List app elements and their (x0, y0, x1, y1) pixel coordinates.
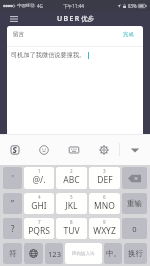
button[interactable]: ' (3, 167, 22, 189)
button[interactable]: 换行 (124, 243, 147, 264)
button[interactable]: 1 (24, 167, 54, 189)
staticText: 优步 (81, 15, 94, 23)
button[interactable]: 6 (89, 193, 120, 214)
staticText: ' (12, 173, 14, 184)
button[interactable]: ? (3, 218, 22, 239)
button[interactable]: 3 (89, 167, 120, 189)
staticText: 4 (38, 194, 41, 200)
staticText: 5 (70, 194, 73, 200)
staticText: UBER (57, 14, 81, 24)
staticText: MNO (94, 200, 115, 212)
staticText: 搜狗输入法 (72, 251, 95, 257)
staticText: 9 (103, 219, 106, 225)
button[interactable]: 重输 (122, 193, 147, 214)
staticText: DEF (97, 174, 113, 186)
button[interactable]: 9 (89, 218, 120, 239)
staticText: 0 (132, 224, 137, 234)
staticText: 6 (103, 194, 106, 200)
button[interactable]: 中。 (104, 243, 122, 264)
button[interactable]: Sogou input method (0, 134, 29, 165)
staticText: 2 (70, 168, 73, 174)
staticText: WXYZ (93, 225, 116, 237)
staticText: PQRS (28, 225, 50, 237)
staticText: ” (11, 198, 14, 209)
button[interactable]: Switch language (24, 243, 43, 264)
button[interactable]: Space (65, 243, 102, 264)
button[interactable]: 8 (56, 218, 87, 239)
button[interactable]: 123 (45, 243, 63, 264)
staticText: ABC (63, 174, 80, 186)
staticText: GHI (31, 200, 47, 212)
staticText: 1 (38, 168, 41, 174)
staticText: @/. (32, 174, 46, 186)
staticText: 123 (48, 249, 61, 259)
staticText: 下午11:44 (63, 3, 84, 9)
button[interactable]: 完成 (120, 27, 137, 42)
staticText: 中。 (106, 249, 121, 258)
button[interactable]: Hide keyboard (120, 134, 150, 165)
button[interactable]: 符 (3, 243, 22, 264)
button[interactable]: Backspace (122, 167, 147, 189)
button[interactable]: 4 (24, 193, 54, 214)
staticText: 换行 (128, 249, 143, 258)
button[interactable]: Keyboard layout (59, 134, 89, 165)
staticText: 重输 (127, 199, 142, 208)
button[interactable]: Emoji (29, 134, 59, 165)
staticText: 3 (103, 168, 106, 174)
button[interactable]: Settings (89, 134, 119, 165)
staticText: 留言 (13, 31, 25, 38)
button[interactable]: 5 (56, 193, 87, 214)
staticText: 完成 (123, 31, 134, 38)
staticText: 4G (37, 3, 43, 9)
button[interactable]: Menu (10, 16, 18, 22)
staticText: 7 (38, 219, 41, 225)
staticText: TUV (63, 225, 80, 237)
staticText: JKL (65, 200, 78, 212)
button[interactable]: 7 (24, 218, 54, 239)
staticText: 中国移动 (17, 3, 35, 9)
button[interactable]: ” (3, 193, 22, 214)
staticText: 8 (70, 219, 73, 225)
button[interactable]: 0 (122, 218, 147, 239)
staticText: ? (11, 223, 15, 234)
button[interactable]: 2 (56, 167, 87, 189)
staticText: 司机加了我微信说要撞我。 (11, 51, 86, 59)
staticText: 83% (128, 3, 137, 9)
staticText: 符 (9, 249, 17, 258)
